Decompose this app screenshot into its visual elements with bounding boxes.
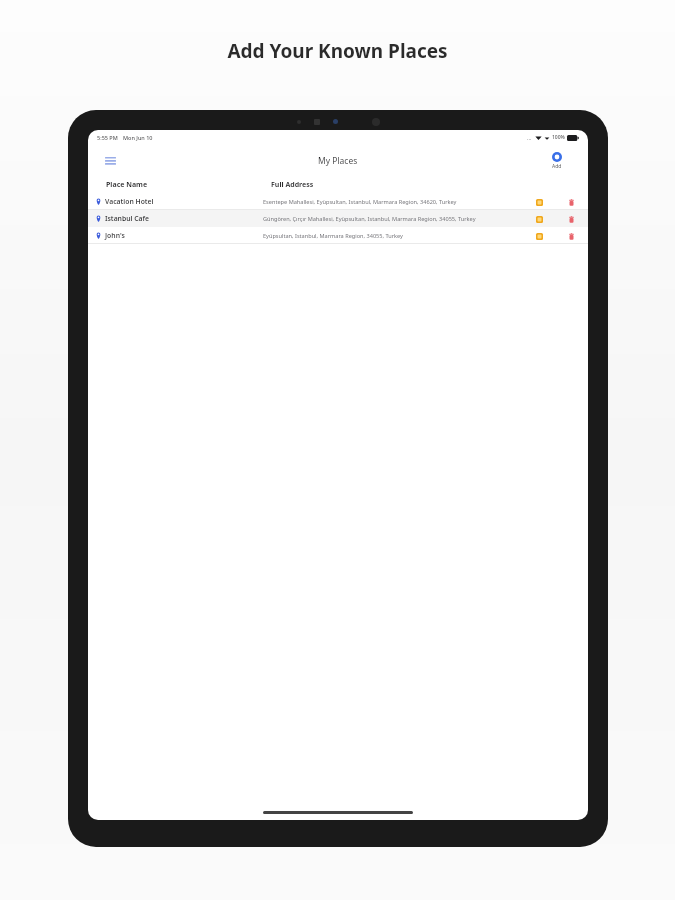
- button[interactable]: Delete: [564, 195, 578, 209]
- button[interactable]: Delete: [564, 212, 578, 226]
- staticText: Güngören, Çırçır Mahallesi, Eyüpsultan, …: [263, 215, 532, 223]
- staticText: Mon Jun 10: [123, 134, 153, 141]
- staticText: Istanbul Cafe: [105, 214, 263, 223]
- staticText: ...: [527, 134, 532, 141]
- staticText: 100%: [552, 134, 565, 141]
- button[interactable]: Menu: [100, 151, 120, 171]
- button[interactable]: Delete: [564, 229, 578, 243]
- staticText: Full Address: [271, 180, 314, 190]
- button[interactable]: Edit: [532, 212, 546, 226]
- staticText: Add: [552, 163, 562, 170]
- staticText: 5:55 PM: [97, 134, 118, 141]
- staticText: Add Your Known Places: [227, 38, 448, 64]
- staticText: My Places: [318, 155, 358, 167]
- button[interactable]: Vacation Hotel: [88, 193, 588, 210]
- button[interactable]: Istanbul Cafe: [88, 210, 588, 227]
- button[interactable]: Edit: [532, 195, 546, 209]
- staticText: Vacation Hotel: [105, 197, 263, 206]
- staticText: John's: [105, 231, 263, 240]
- staticText: Place Name: [106, 180, 271, 190]
- staticText: Eyüpsultan, Istanbul, Marmara Region, 34…: [263, 232, 532, 240]
- button[interactable]: John's: [88, 227, 588, 244]
- button[interactable]: Edit: [532, 229, 546, 243]
- button[interactable]: Add: [540, 152, 574, 170]
- staticText: Esentepe Mahallesi, Eyüpsultan, Istanbul…: [263, 198, 532, 206]
